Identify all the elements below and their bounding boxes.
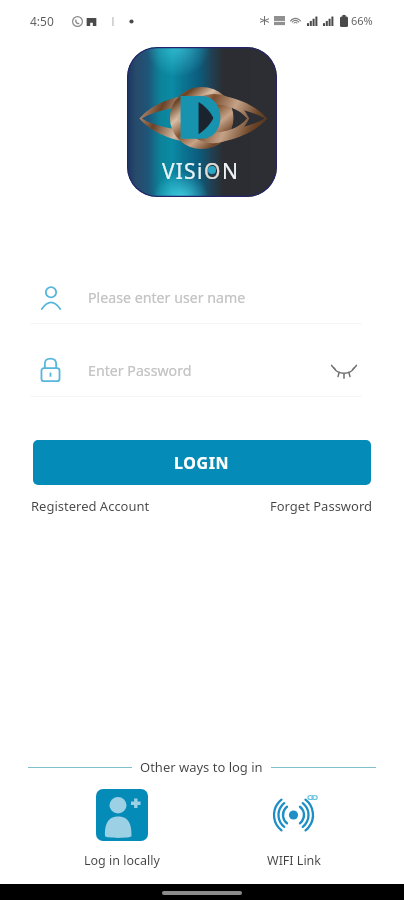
staticText: Other ways to log in [140, 758, 263, 776]
button[interactable]: Log in locally [52, 789, 192, 869]
staticText: Registered Account [31, 497, 150, 515]
staticText: O [204, 157, 222, 186]
staticText: i [197, 157, 204, 186]
staticText: 66% [351, 13, 373, 28]
button[interactable]: Show password [328, 355, 360, 385]
button[interactable]: Forget Password [270, 497, 373, 515]
button[interactable]: Registered Account [31, 497, 150, 515]
staticText: LOGIN [174, 452, 230, 474]
staticText: Log in locally [84, 852, 160, 869]
staticText: N [222, 157, 240, 186]
staticText: 4:50 [30, 13, 54, 29]
staticText: VIS [162, 157, 197, 186]
button[interactable]: WIFI Link [224, 789, 364, 869]
staticText: Please enter user name [88, 288, 246, 307]
staticText: Forget Password [270, 497, 373, 515]
button[interactable]: LOGIN [33, 440, 371, 485]
staticText: Enter Password [88, 361, 192, 380]
staticText: WIFI Link [267, 852, 322, 869]
